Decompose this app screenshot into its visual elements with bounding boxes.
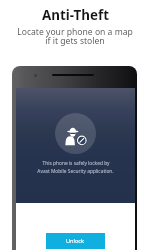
staticText: Anti-Theft — [42, 6, 109, 24]
staticText: Locate your phone on a map if it gets st… — [17, 26, 133, 47]
staticText: Unlock — [66, 237, 85, 245]
staticText: This phone is safely locked by — [42, 160, 110, 167]
staticText: Avast Mobile Security application. — [37, 168, 114, 175]
button[interactable]: Unlock — [46, 233, 105, 249]
other: Device locked — [55, 113, 96, 154]
